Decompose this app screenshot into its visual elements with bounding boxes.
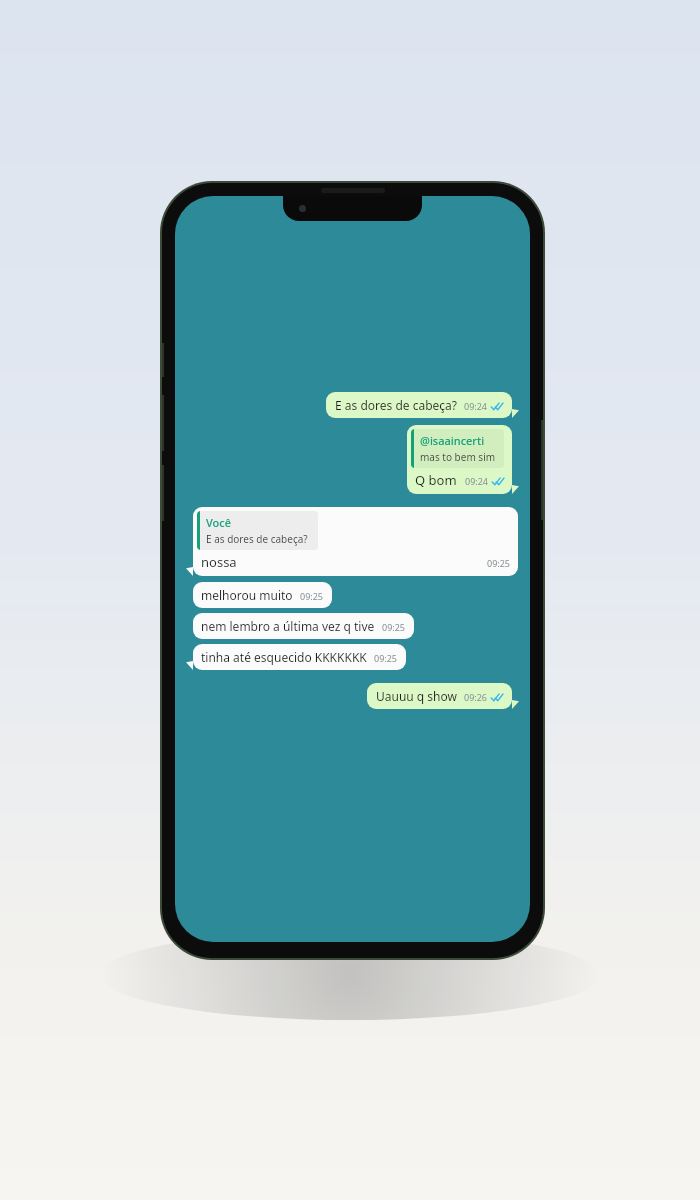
button[interactable]: E as dores de cabeça? (326, 392, 512, 418)
staticText: 09:24 (465, 475, 489, 487)
staticText: nossa (201, 553, 237, 571)
button[interactable]: Uauuu q show (367, 683, 512, 709)
button[interactable]: melhorou muito (193, 582, 332, 608)
button[interactable]: @isaaincerti (407, 425, 512, 494)
staticText: 09:26 (464, 691, 488, 703)
staticText: E as dores de cabeça? (335, 397, 457, 413)
button[interactable]: nem lembro a última vez q tive (193, 613, 414, 639)
staticText: E as dores de cabeça? (206, 532, 308, 546)
staticText: Você (206, 515, 231, 530)
staticText: Q bom (415, 471, 457, 489)
staticText: 09:25 (300, 590, 324, 602)
staticText: melhorou muito (201, 587, 293, 603)
staticText: 09:25 (382, 621, 406, 633)
staticText: mas to bem sim (420, 450, 496, 464)
staticText: 09:24 (464, 400, 488, 412)
button[interactable]: tinha até esquecido KKKKKKK (193, 644, 406, 670)
staticText: 09:25 (374, 652, 398, 664)
staticText: Uauuu q show (376, 688, 457, 704)
staticText: nem lembro a última vez q tive (201, 618, 375, 634)
staticText: @isaaincerti (420, 433, 485, 448)
button[interactable]: Você (193, 507, 518, 576)
staticText: 09:25 (487, 557, 511, 569)
staticText: tinha até esquecido KKKKKKK (201, 649, 367, 665)
